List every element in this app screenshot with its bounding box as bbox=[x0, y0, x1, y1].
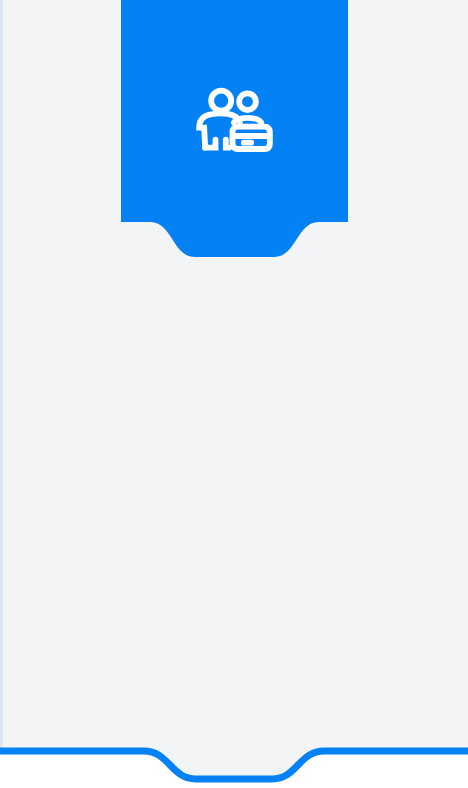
button[interactable]: Contacts and payments screen bbox=[0, 0, 468, 788]
